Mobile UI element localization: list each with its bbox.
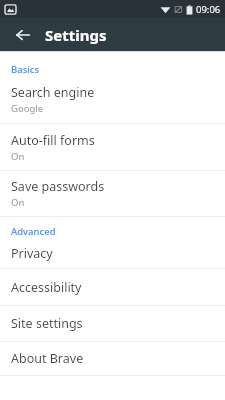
staticText: Settings	[45, 25, 107, 45]
button[interactable]: Search engine	[0, 76, 225, 123]
button[interactable]: About Brave	[0, 342, 225, 375]
button[interactable]: Auto-fill forms	[0, 124, 225, 170]
button[interactable]: Site settings	[0, 306, 225, 341]
button[interactable]: Back	[11, 23, 35, 47]
staticText: Advanced	[11, 225, 56, 238]
staticText: About Brave	[11, 350, 84, 367]
staticText: Basics	[11, 63, 40, 76]
button[interactable]: Privacy	[0, 238, 225, 268]
staticText: Accessibility	[11, 279, 82, 296]
staticText: On	[11, 150, 25, 163]
staticText: Auto-fill forms	[11, 132, 95, 149]
button[interactable]: Accessibility	[0, 269, 225, 305]
button[interactable]: Save passwords	[0, 171, 225, 216]
staticText: Save passwords	[11, 178, 105, 195]
staticText: Privacy	[11, 245, 53, 262]
staticText: On	[11, 196, 25, 209]
staticText: Google	[11, 102, 44, 115]
staticText: 09:06	[196, 3, 221, 16]
staticText: Site settings	[11, 315, 83, 332]
staticText: Search engine	[11, 84, 95, 101]
